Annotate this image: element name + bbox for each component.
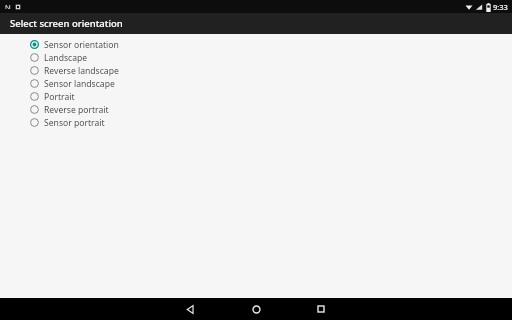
staticText: Reverse landscape <box>44 65 119 77</box>
staticText: Landscape <box>44 52 88 64</box>
staticText: 9:33 <box>493 2 508 12</box>
button[interactable]: Home <box>241 298 271 320</box>
button[interactable]: Reverse portrait <box>0 103 512 116</box>
button[interactable]: Reverse landscape <box>0 64 512 77</box>
staticText: Sensor landscape <box>44 78 115 90</box>
button[interactable]: Sensor orientation <box>0 38 512 51</box>
button[interactable]: Recent apps <box>306 298 336 320</box>
staticText: Select screen orientation <box>10 17 123 30</box>
staticText: Sensor orientation <box>44 39 119 51</box>
staticText: Portrait <box>44 91 75 103</box>
button[interactable]: Back <box>175 298 205 320</box>
button[interactable]: Sensor landscape <box>0 77 512 90</box>
button[interactable]: Sensor portrait <box>0 116 512 129</box>
button[interactable]: Landscape <box>0 51 512 64</box>
button[interactable]: Portrait <box>0 90 512 103</box>
staticText: Sensor portrait <box>44 117 105 129</box>
staticText: Reverse portrait <box>44 104 109 116</box>
